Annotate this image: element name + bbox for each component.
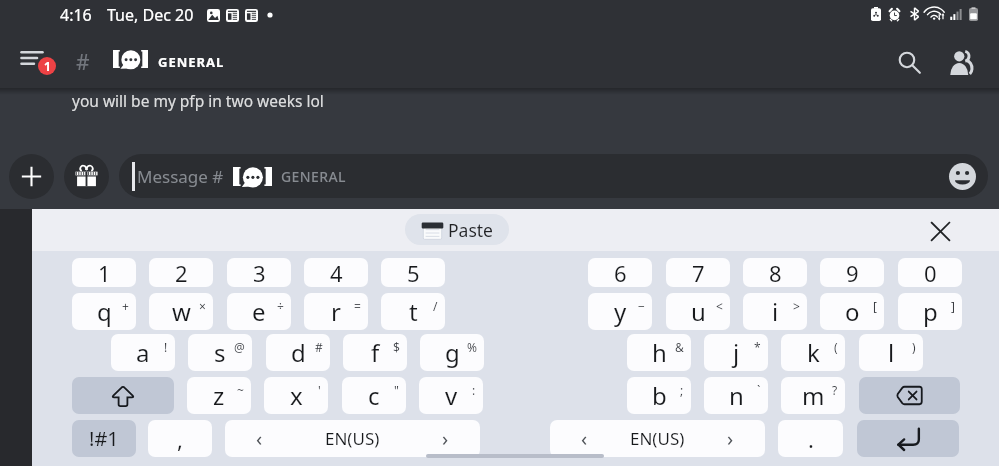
staticText: d: [291, 336, 306, 369]
staticText: EN(US): [630, 427, 685, 450]
staticText: #: [76, 48, 90, 77]
button[interactable]: x: [264, 377, 328, 414]
button[interactable]: z: [187, 377, 251, 414]
staticText: <: [716, 298, 723, 314]
staticText: q: [97, 295, 112, 328]
button[interactable]: o: [820, 293, 884, 330]
button[interactable]: 1: [72, 258, 136, 287]
button[interactable]: !#1: [72, 420, 136, 457]
button[interactable]: 8: [743, 258, 807, 287]
staticText: &: [675, 339, 684, 355]
staticText: ): [912, 339, 916, 355]
button[interactable]: ,: [148, 420, 212, 457]
staticText: l: [888, 336, 895, 369]
staticText: /: [433, 298, 438, 314]
staticText: o: [845, 295, 860, 328]
staticText: Paste: [448, 218, 493, 242]
button[interactable]: 0: [898, 258, 962, 287]
staticText: k: [807, 336, 820, 369]
staticText: m: [802, 379, 825, 412]
staticText: :: [472, 382, 476, 398]
staticText: v: [445, 379, 458, 412]
button[interactable]: k: [781, 334, 845, 371]
staticText: ': [318, 382, 321, 398]
button[interactable]: Send gift: [64, 154, 109, 199]
staticText: x: [290, 379, 303, 412]
button[interactable]: u: [666, 293, 730, 330]
staticText: i: [772, 295, 779, 328]
button[interactable]: [857, 420, 959, 457]
staticText: 5: [407, 258, 420, 287]
staticText: 8: [769, 258, 782, 287]
button[interactable]: [72, 377, 174, 414]
button[interactable]: s: [188, 334, 252, 371]
button[interactable]: Menu: [6, 36, 60, 88]
button[interactable]: Paste: [405, 214, 509, 245]
button[interactable]: [859, 377, 960, 414]
staticText: ": [394, 382, 399, 398]
button[interactable]: ‹: [550, 420, 765, 457]
staticText: Tue, Dec 20: [107, 4, 194, 26]
button[interactable]: l: [859, 334, 923, 371]
staticText: ÷: [277, 298, 284, 314]
button[interactable]: a: [111, 334, 175, 371]
button[interactable]: 7: [666, 258, 730, 287]
staticText: #: [315, 339, 323, 355]
button[interactable]: Add attachment: [9, 154, 54, 199]
staticText: ‹: [581, 425, 588, 452]
button[interactable]: i: [743, 293, 807, 330]
button[interactable]: 6: [588, 258, 652, 287]
button[interactable]: Emoji: [946, 160, 978, 192]
staticText: ×: [199, 298, 206, 314]
button[interactable]: j: [704, 334, 768, 371]
button[interactable]: Search: [883, 36, 935, 88]
staticText: you will be my pfp in two weeks lol: [72, 90, 324, 111]
button[interactable]: w: [149, 293, 213, 330]
button[interactable]: Members: [935, 36, 987, 88]
button[interactable]: m: [781, 377, 845, 414]
button[interactable]: 3: [227, 258, 291, 287]
staticText: f: [371, 336, 380, 369]
button[interactable]: r: [304, 293, 368, 330]
button[interactable]: Message #: [119, 154, 988, 198]
button[interactable]: 4: [304, 258, 368, 287]
button[interactable]: 2: [149, 258, 213, 287]
button[interactable]: p: [898, 293, 962, 330]
button[interactable]: t: [381, 293, 445, 330]
staticText: ;: [680, 382, 684, 398]
staticText: 7: [692, 258, 705, 287]
staticText: r: [331, 295, 341, 328]
button[interactable]: Close keyboard: [919, 210, 961, 252]
button[interactable]: d: [266, 334, 330, 371]
button[interactable]: y: [588, 293, 652, 330]
button[interactable]: n: [704, 377, 768, 414]
staticText: 1: [98, 258, 111, 287]
staticText: j: [733, 336, 740, 369]
button[interactable]: .: [778, 420, 843, 457]
staticText: 4:16: [60, 4, 92, 26]
button[interactable]: ‹: [225, 420, 480, 457]
staticText: .: [808, 424, 814, 454]
staticText: GENERAL: [281, 167, 346, 186]
staticText: z: [213, 379, 225, 412]
button[interactable]: c: [342, 377, 406, 414]
button[interactable]: q: [72, 293, 136, 330]
staticText: n: [729, 379, 744, 412]
staticText: !#1: [89, 425, 119, 452]
staticText: ?: [832, 382, 838, 398]
button[interactable]: v: [419, 377, 483, 414]
button[interactable]: h: [627, 334, 691, 371]
staticText: g: [445, 336, 460, 369]
staticText: 3: [253, 258, 266, 287]
staticText: [: [873, 298, 877, 314]
staticText: t: [409, 295, 418, 328]
button[interactable]: g: [420, 334, 484, 371]
staticText: $: [393, 339, 400, 355]
staticText: GENERAL: [158, 53, 225, 71]
button[interactable]: 9: [820, 258, 884, 287]
button[interactable]: f: [343, 334, 407, 371]
button[interactable]: e: [227, 293, 291, 330]
button[interactable]: b: [627, 377, 691, 414]
staticText: c: [368, 379, 380, 412]
button[interactable]: 5: [381, 258, 445, 287]
